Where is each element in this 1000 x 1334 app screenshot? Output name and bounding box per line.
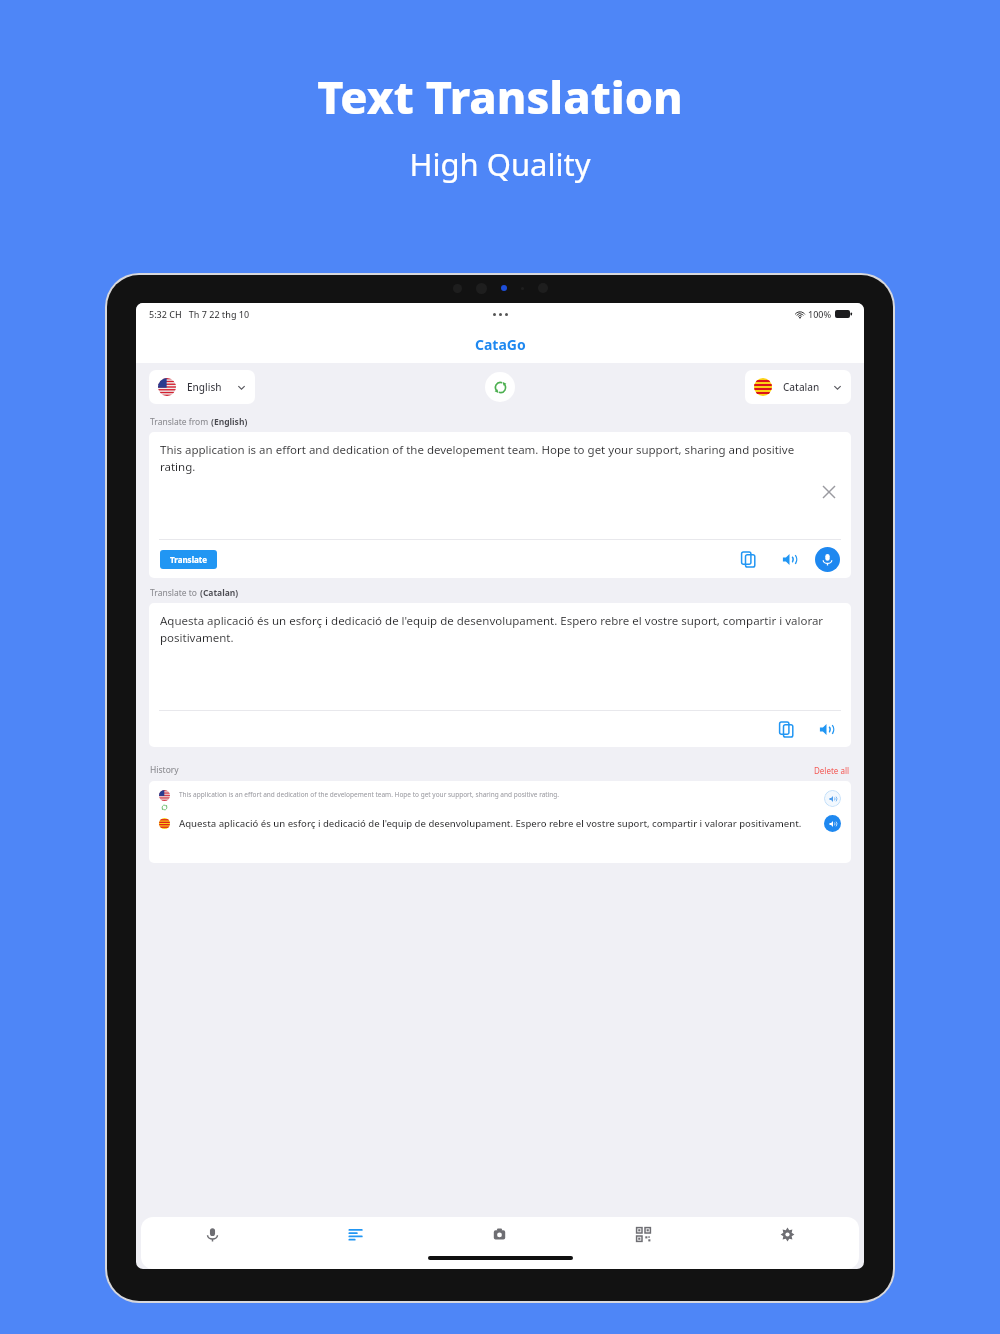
staticText: This application is an effort and dedica… xyxy=(160,442,811,474)
staticText: This application is an effort and dedica… xyxy=(179,790,818,799)
staticText: Aquesta aplicació és un esforç i dedicac… xyxy=(160,613,825,645)
button[interactable]: Voice input xyxy=(815,547,840,572)
staticText: Translate from xyxy=(150,416,211,428)
staticText: Catalan xyxy=(783,380,820,394)
button[interactable]: Play translation audio xyxy=(824,815,841,832)
staticText: (English) xyxy=(211,416,248,428)
staticText: CataGo xyxy=(475,335,526,354)
button[interactable]: Clear text xyxy=(819,482,839,502)
staticText: English xyxy=(187,380,222,394)
button[interactable]: English xyxy=(149,370,255,404)
button[interactable]: Voice xyxy=(141,1217,284,1251)
staticText: Delete all xyxy=(814,765,850,776)
staticText: Translate xyxy=(170,554,208,565)
staticText: Aquesta aplicació és un esforç i dedicac… xyxy=(179,817,818,830)
staticText: Text Translation xyxy=(317,66,683,127)
staticText: 5:32 CH Th 7 22 thg 10 xyxy=(149,308,250,320)
staticText: 100% xyxy=(808,308,832,320)
button[interactable]: Camera xyxy=(427,1217,571,1251)
staticText: History xyxy=(150,764,179,776)
button[interactable]: Copy translation xyxy=(775,718,797,740)
staticText: High Quality xyxy=(409,143,591,185)
button[interactable]: Catalan xyxy=(745,370,851,404)
button[interactable]: Settings xyxy=(715,1217,859,1251)
button[interactable]: Translate xyxy=(160,550,217,569)
staticText: Translate to xyxy=(150,587,200,599)
button[interactable]: Copy xyxy=(737,548,759,570)
button[interactable]: Scan code xyxy=(571,1217,715,1251)
button[interactable]: Swap languages xyxy=(485,372,515,402)
button[interactable]: Text translation xyxy=(284,1217,427,1251)
staticText: (Catalan) xyxy=(200,587,239,599)
button[interactable]: Speak translation xyxy=(815,718,837,740)
button[interactable]: This application is an effort and dedica… xyxy=(149,781,851,863)
button[interactable]: Delete all xyxy=(814,765,850,776)
button[interactable]: Play source audio xyxy=(824,790,841,807)
button[interactable]: Speak xyxy=(778,548,800,570)
